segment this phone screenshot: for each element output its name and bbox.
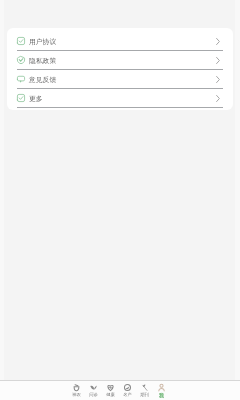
- staticText: 神农: [72, 392, 81, 397]
- staticText: 意见反馈: [29, 75, 57, 84]
- button[interactable]: 健康: [102, 381, 119, 400]
- staticText: 名产: [123, 392, 132, 397]
- staticText: 期刊: [140, 392, 149, 397]
- button[interactable]: 我: [153, 381, 170, 400]
- button[interactable]: 更多: [7, 89, 233, 108]
- staticText: 用户协议: [29, 37, 57, 46]
- staticText: 我: [159, 392, 164, 398]
- button[interactable]: 隐私政策: [7, 51, 233, 70]
- staticText: 健康: [106, 392, 115, 397]
- button[interactable]: 问诊: [85, 381, 102, 400]
- staticText: 隐私政策: [29, 56, 57, 65]
- button[interactable]: 期刊: [136, 381, 153, 400]
- staticText: 问诊: [89, 392, 98, 397]
- button[interactable]: 用户协议: [7, 32, 233, 51]
- staticText: 更多: [29, 94, 43, 103]
- button[interactable]: 意见反馈: [7, 70, 233, 89]
- button[interactable]: 名产: [119, 381, 136, 400]
- button[interactable]: 神农: [68, 381, 85, 400]
